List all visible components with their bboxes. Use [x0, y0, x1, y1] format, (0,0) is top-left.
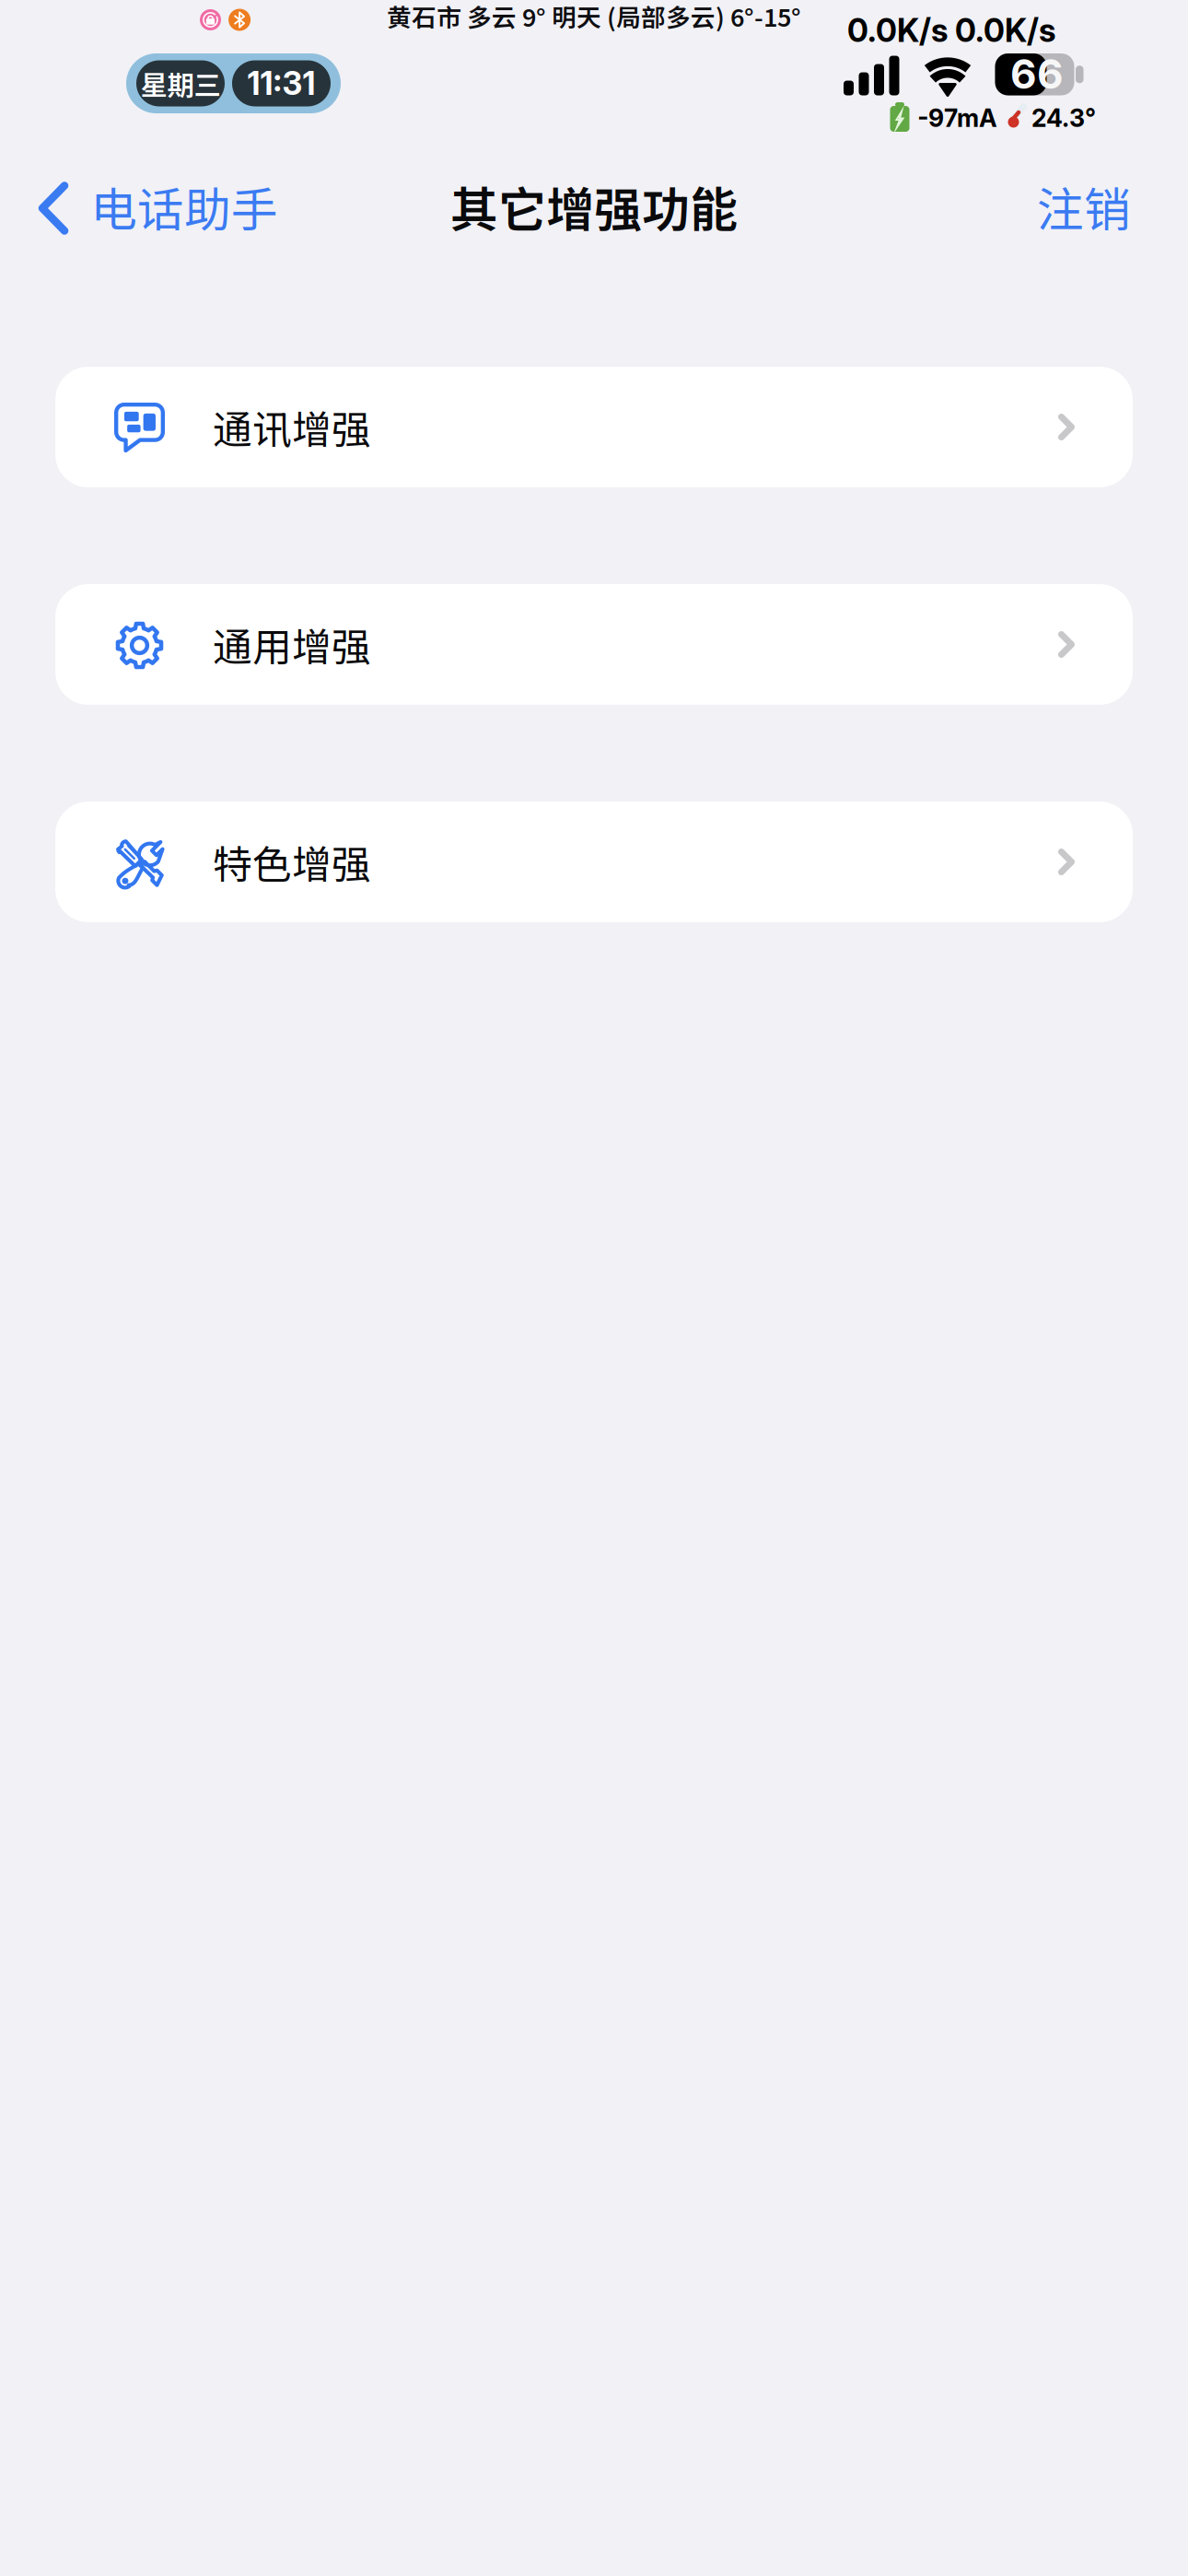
button[interactable]: 特色增强: [55, 802, 1133, 922]
staticText: 注销: [1037, 173, 1131, 240]
staticText: 11:31: [247, 64, 315, 103]
staticText: 特色增强: [213, 833, 371, 890]
staticText: -97mA: [917, 103, 997, 133]
staticText: 24.3°: [1031, 103, 1096, 133]
staticText: 星期三: [140, 64, 221, 103]
staticText: 66: [1010, 49, 1064, 98]
button[interactable]: 通用增强: [55, 584, 1133, 705]
button[interactable]: 通讯增强: [55, 367, 1133, 487]
staticText: 黄石市 多云 9° 明天 (局部多云) 6°-15°: [387, 0, 801, 34]
button[interactable]: 电话助手: [0, 158, 297, 251]
staticText: 其它增强功能: [450, 172, 738, 241]
staticText: 通用增强: [213, 616, 371, 673]
staticText: 电话助手: [90, 173, 278, 240]
staticText: 0.0K/s 0.0K/s: [847, 11, 1055, 50]
staticText: 通讯增强: [213, 399, 371, 455]
button[interactable]: 注销: [1015, 158, 1188, 251]
